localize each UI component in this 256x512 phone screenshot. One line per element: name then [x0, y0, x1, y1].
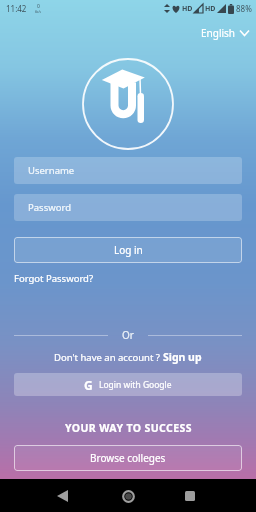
button[interactable]: G [14, 373, 242, 396]
staticText: kb/s [35, 10, 42, 14]
button[interactable]: Log in [14, 237, 242, 263]
staticText: Login with Google [99, 379, 172, 391]
button[interactable] [181, 487, 199, 505]
staticText: HD [205, 4, 216, 14]
staticText: 11:42 [6, 3, 27, 14]
staticText: 88% [236, 3, 252, 14]
staticText: Or [122, 328, 134, 342]
staticText: English [201, 26, 236, 40]
button[interactable]: Don't have an account ? [0, 350, 256, 364]
staticText: Username [28, 164, 75, 177]
button[interactable]: Forgot Password? [14, 272, 94, 285]
staticText: Don't have an account ? [54, 351, 163, 364]
button[interactable]: Browse colleges [14, 445, 242, 471]
staticText: Browse colleges [90, 451, 166, 465]
button[interactable] [119, 487, 137, 505]
staticText: Password [28, 201, 71, 214]
staticText: Sign up [163, 350, 202, 364]
button[interactable]: English [201, 26, 249, 40]
button[interactable]: Username [14, 157, 242, 184]
staticText: YOUR WAY TO SUCCESS [65, 421, 192, 435]
staticText: G [84, 377, 93, 393]
button[interactable] [53, 487, 71, 505]
staticText: 0 [37, 3, 40, 10]
staticText: HD [182, 4, 193, 14]
button[interactable]: Password [14, 194, 242, 221]
staticText: Log in [114, 243, 143, 257]
